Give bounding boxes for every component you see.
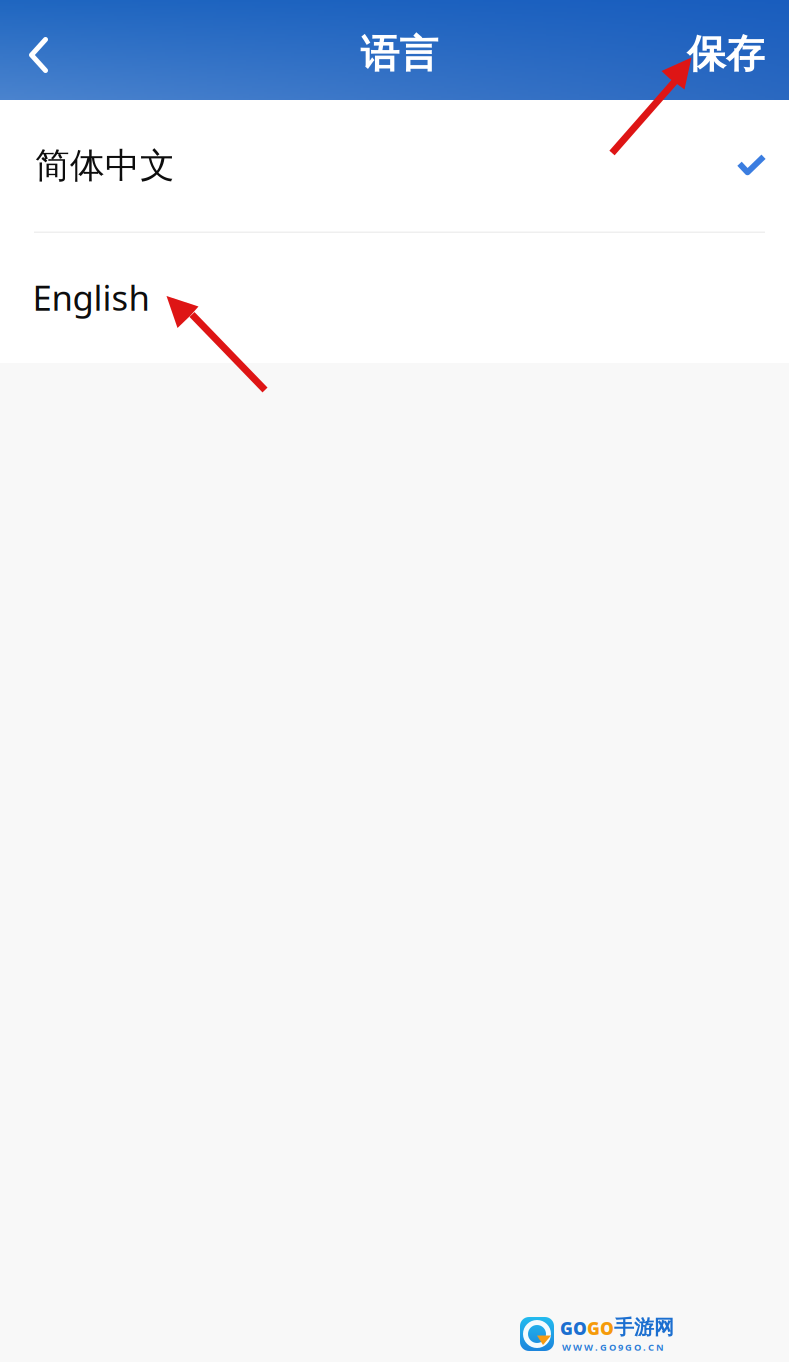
staticText: English <box>32 274 149 320</box>
staticText: 简体中文 <box>35 144 175 187</box>
staticText: GO <box>587 1317 614 1340</box>
button[interactable]: Back <box>0 0 84 100</box>
staticText: GO <box>560 1317 587 1340</box>
button[interactable]: English <box>0 231 789 363</box>
button[interactable]: 保存 <box>659 0 789 100</box>
staticText: 保存 <box>687 30 765 78</box>
button[interactable]: 简体中文 <box>0 100 789 231</box>
staticText: 语言 <box>360 30 438 78</box>
staticText: 手游网 <box>614 1315 674 1340</box>
staticText: W W W . G O 9 G O . C N <box>562 1341 664 1353</box>
